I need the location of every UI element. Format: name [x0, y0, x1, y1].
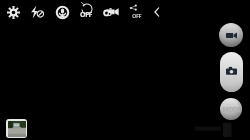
button[interactable]: Share off: [124, 1, 146, 23]
button[interactable]: Timer off: [75, 1, 97, 23]
button[interactable]: Microphone on: [51, 1, 73, 23]
button[interactable]: Back: [146, 1, 168, 23]
button[interactable]: Gallery: [6, 119, 27, 138]
button[interactable]: Settings: [2, 1, 24, 23]
button[interactable]: Video mode: [100, 1, 122, 23]
staticText: OFF: [80, 10, 93, 20]
staticText: OFF: [132, 12, 142, 19]
button[interactable]: Take photo: [220, 52, 243, 92]
staticText: MODE: [222, 105, 241, 114]
button[interactable]: Record video: [219, 23, 243, 47]
button[interactable]: MODE: [220, 98, 242, 120]
button[interactable]: Flash off: [26, 1, 48, 23]
